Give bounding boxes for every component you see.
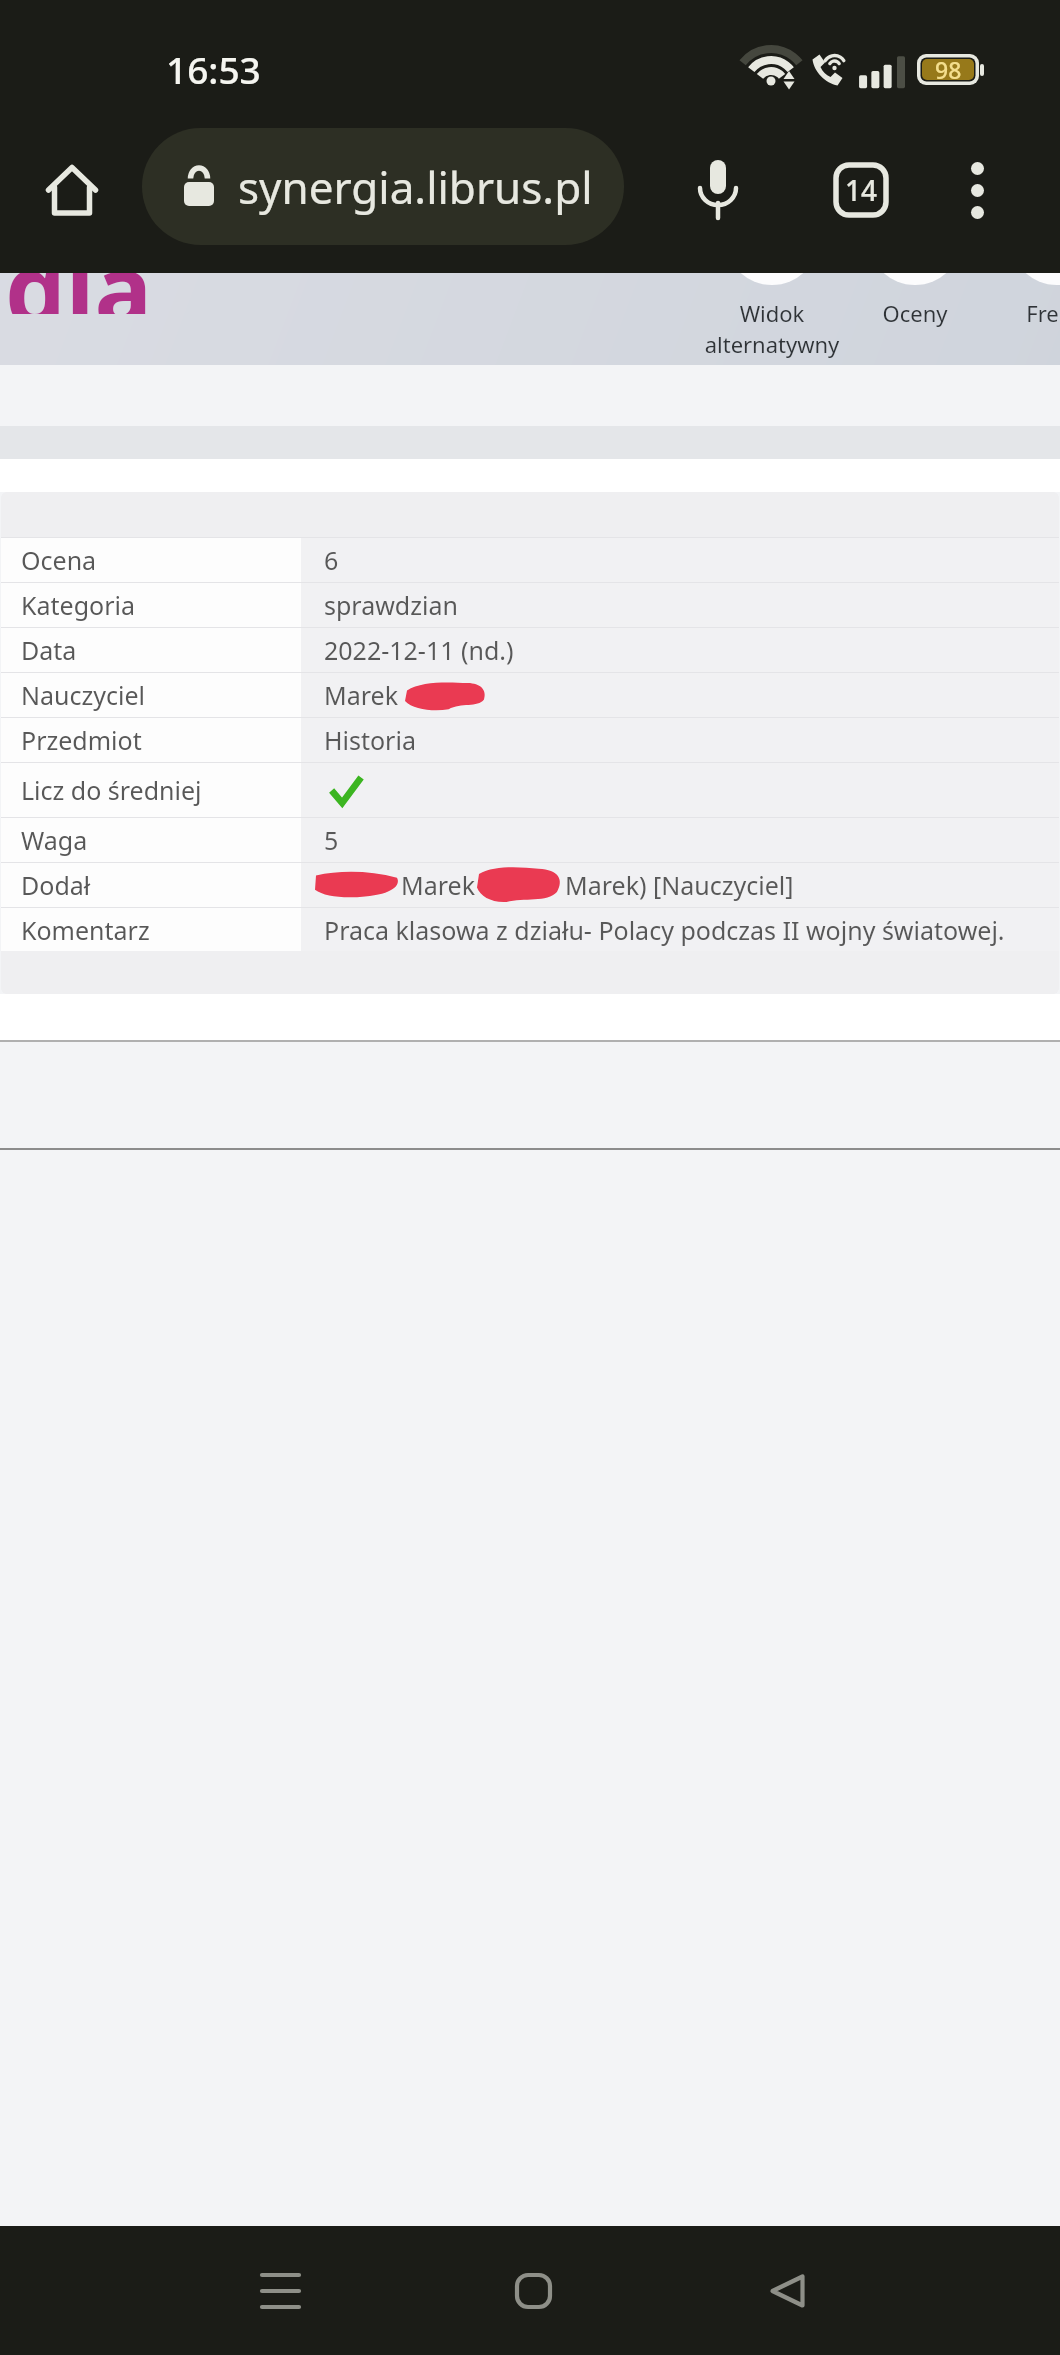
staticText: Nauczyciel xyxy=(21,678,145,712)
staticText: Widok alternatywny xyxy=(677,298,867,360)
staticText: gia xyxy=(5,273,152,314)
staticText: Praca klasowa z działu- Polacy podczas I… xyxy=(324,913,1005,947)
staticText: Marek xyxy=(401,868,475,902)
staticText: Marek xyxy=(324,678,398,712)
staticText: 16:53 xyxy=(166,44,261,94)
button[interactable]: Frekw xyxy=(986,273,1060,365)
button[interactable]: More options xyxy=(941,154,1013,226)
staticText: 98 xyxy=(935,54,962,85)
button[interactable]: Tabs: 14 open xyxy=(825,154,897,226)
staticText: Oceny xyxy=(844,298,986,328)
staticText: Historia xyxy=(324,723,416,757)
button[interactable]: Widok alternatywny xyxy=(677,273,867,365)
staticText: Marek) [Nauczyciel] xyxy=(565,868,794,902)
staticText: Przedmiot xyxy=(21,723,142,757)
staticText: Licz do średniej xyxy=(21,773,202,807)
staticText: Dodał xyxy=(21,868,91,902)
staticText: Kategoria xyxy=(21,588,135,622)
staticText: Waga xyxy=(21,823,88,857)
staticText: synergia.librus.pl xyxy=(238,157,593,217)
staticText: Ocena xyxy=(21,543,97,577)
staticText: Frekw xyxy=(986,298,1060,328)
staticText: Komentarz xyxy=(21,913,150,947)
staticText: sprawdzian xyxy=(324,588,458,622)
staticText: Data xyxy=(21,633,77,667)
staticText: 14 xyxy=(845,171,878,209)
button[interactable]: synergia.librus.pl xyxy=(142,128,624,245)
button[interactable]: Home xyxy=(36,154,108,226)
button[interactable]: Voice search xyxy=(682,154,754,226)
button[interactable]: Oceny xyxy=(844,273,986,365)
button[interactable]: Recent apps xyxy=(210,2226,350,2355)
staticText: 5 xyxy=(324,823,339,857)
button[interactable]: Back xyxy=(717,2226,857,2355)
button[interactable]: Home xyxy=(463,2226,603,2355)
staticText: 6 xyxy=(324,543,339,577)
staticText: 2022-12-11 (nd.) xyxy=(324,633,514,667)
